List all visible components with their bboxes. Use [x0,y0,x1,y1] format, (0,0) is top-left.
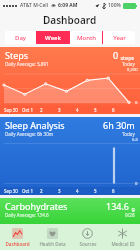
staticText: Year [113,34,126,42]
staticText: 8,200 [127,67,138,73]
staticText: 6h 30m [103,119,135,131]
staticText: 3 [58,188,61,194]
staticText: Steps [5,49,29,61]
staticText: 9/28 [125,212,135,218]
staticText: Sources [79,241,97,247]
staticText: Sep 30 [4,188,18,194]
staticText: 0 [113,49,119,61]
staticText: 100% [108,2,121,9]
staticText: Daily Average: 6h 30m [5,131,54,137]
staticText: 2 [40,107,43,113]
staticText: 5 [94,188,97,194]
staticText: Health Data [39,241,66,247]
button[interactable]: Month [70,31,102,44]
staticText: Dashboard [5,241,30,247]
staticText: 4 [76,188,79,194]
staticText: Today [122,131,135,137]
staticText: Carbohydrates [5,200,68,212]
button[interactable]: Dashboard [0,224,35,250]
staticText: Sleep Analysis [5,119,65,131]
staticText: 6 [112,188,115,194]
staticText: Today [122,61,135,67]
staticText: Daily Average: 134.6 [5,212,49,218]
staticText: g [130,205,135,212]
staticText: Dashboard [43,13,97,27]
button[interactable]: Week [37,31,69,44]
staticText: Daily Average: 5,891 [5,61,49,67]
staticText: 134.6 [106,200,130,212]
button[interactable]: Day [5,31,36,44]
staticText: AT&T M-Cell [20,2,49,9]
staticText: Week [45,34,61,42]
staticText: Oct 1 [22,107,33,113]
staticText: 0 [135,181,138,187]
staticText: 4 [76,107,79,113]
staticText: 6 [112,107,115,113]
staticText: Month [77,34,96,42]
button[interactable]: Carbohydrates [0,198,140,224]
staticText: Sep 30 [4,107,18,113]
staticText: 2 [40,188,43,194]
staticText: 3 [58,107,61,113]
button[interactable]: Medical ID [105,224,140,250]
button[interactable]: Sources [70,224,105,250]
button[interactable]: Sleep Analysis [0,117,140,195]
staticText: 5 [94,107,97,113]
button[interactable]: Health Data [35,224,70,250]
staticText: Medical ID [111,241,135,247]
button[interactable]: Year [103,31,135,44]
staticText: 6.5 [132,137,138,143]
staticText: steps [119,54,135,61]
staticText: 6:09 AM [58,2,78,9]
staticText: Oct 1 [22,188,33,194]
button[interactable]: Steps [0,47,140,114]
staticText: Day [15,34,26,42]
staticText: 0 [135,100,138,106]
